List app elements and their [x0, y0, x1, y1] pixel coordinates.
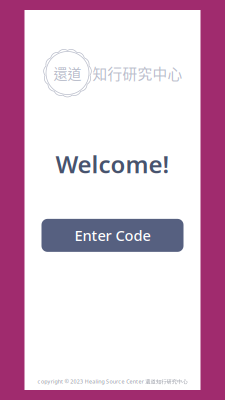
- button[interactable]: Enter Code: [41, 219, 183, 252]
- staticText: 知行研究中心: [92, 62, 182, 84]
- staticText: copyright © 2023 Healing Source Center 還…: [38, 378, 187, 385]
- staticText: Enter Code: [74, 226, 150, 245]
- staticText: 還道: [53, 63, 81, 83]
- staticText: Welcome!: [55, 148, 169, 180]
